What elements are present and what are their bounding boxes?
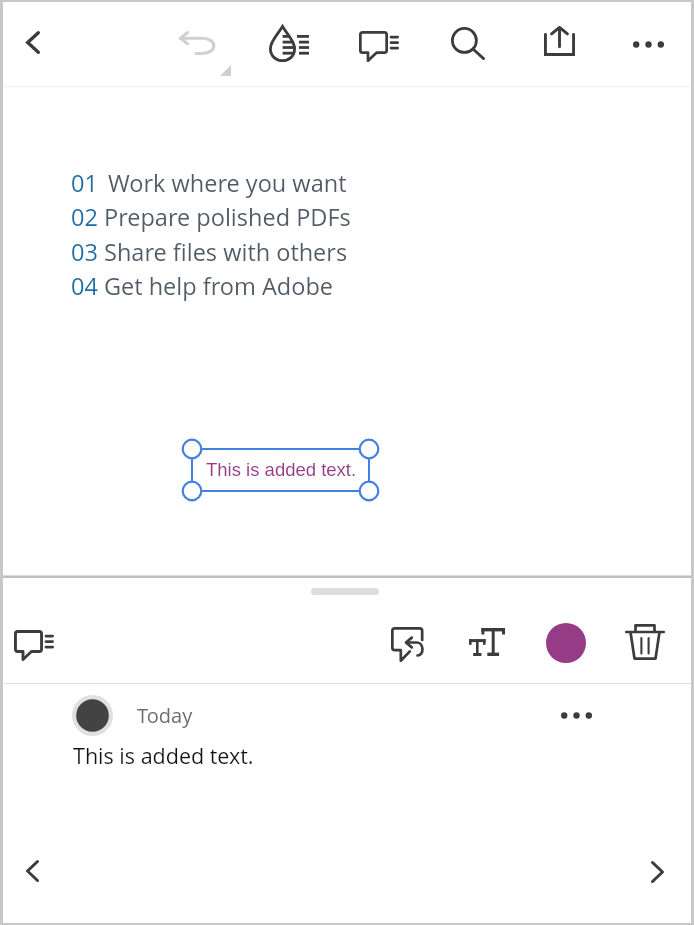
staticText: Today xyxy=(137,702,193,729)
button[interactable]: More options xyxy=(625,21,671,67)
button[interactable]: Delete xyxy=(622,619,668,665)
button[interactable]: Comments xyxy=(353,20,405,72)
button[interactable]: Back xyxy=(10,19,56,65)
button[interactable]: Search xyxy=(445,20,491,66)
button[interactable]: Reply xyxy=(384,621,430,667)
staticText: This is added text. xyxy=(206,459,357,480)
staticText: This is added text. xyxy=(73,741,254,770)
staticText: 04 xyxy=(71,270,98,302)
button[interactable]: Annotation properties xyxy=(263,17,315,69)
button[interactable]: Next page xyxy=(634,849,680,895)
staticText: Work where you want xyxy=(108,167,347,199)
staticText: 02 xyxy=(71,201,98,233)
button[interactable]: Undo xyxy=(175,20,221,66)
button[interactable]: Comment options xyxy=(553,692,599,738)
button[interactable]: Colour xyxy=(543,620,589,666)
staticText: Prepare polished PDFs xyxy=(104,201,351,233)
button[interactable]: Comment list xyxy=(8,619,60,671)
button[interactable]: Share xyxy=(536,18,582,64)
staticText: Get help from Adobe xyxy=(104,270,334,302)
staticText: Share files with others xyxy=(104,236,348,268)
staticText: 01 xyxy=(71,167,98,199)
button[interactable]: Text size xyxy=(464,619,510,665)
button[interactable]: Previous page xyxy=(9,848,55,894)
staticText: 03 xyxy=(71,236,98,268)
